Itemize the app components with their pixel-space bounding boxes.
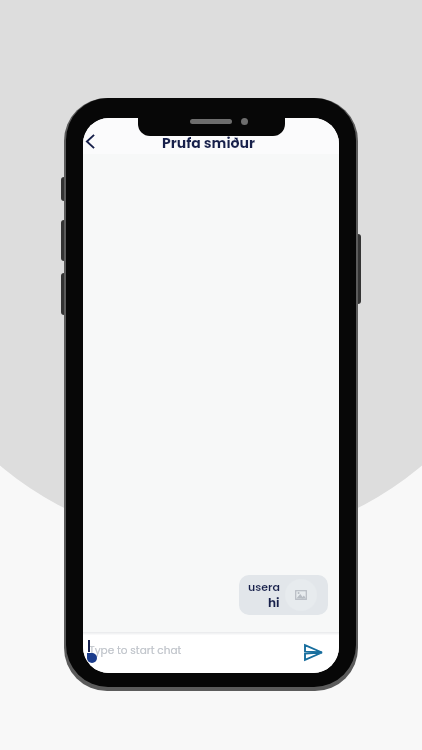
- button[interactable]: Send: [298, 637, 328, 667]
- button[interactable]: usera: [239, 575, 328, 615]
- staticText: Type to start chat: [89, 643, 182, 658]
- staticText: usera: [248, 579, 280, 594]
- staticText: Prufa smiður: [162, 133, 255, 153]
- button[interactable]: Back: [83, 128, 103, 154]
- staticText: hi: [268, 594, 280, 611]
